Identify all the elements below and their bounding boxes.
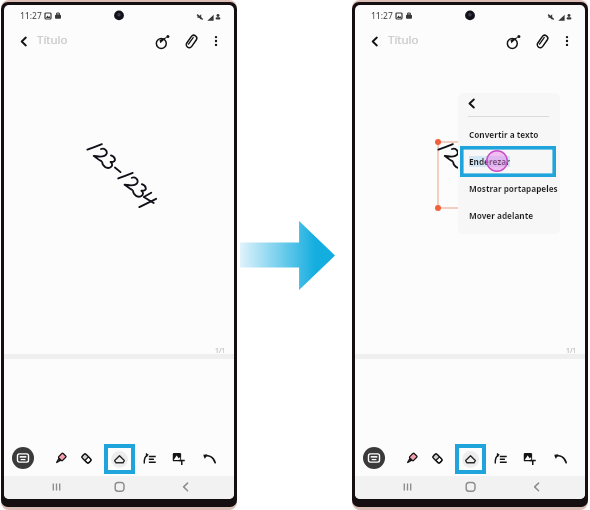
button[interactable]: Back xyxy=(171,476,201,499)
button[interactable]: Highlighter xyxy=(400,447,422,469)
button[interactable]: More options xyxy=(204,29,228,53)
staticText: 11:27 xyxy=(20,10,42,22)
button[interactable]: Back xyxy=(363,30,385,52)
staticText: Mover adelante xyxy=(469,210,534,221)
button[interactable]: Back xyxy=(12,30,34,52)
button[interactable]: Align text xyxy=(489,447,511,469)
staticText: 11:27 xyxy=(371,10,393,22)
button[interactable]: Insert text xyxy=(518,447,540,469)
button[interactable]: Eraser xyxy=(75,447,97,469)
button[interactable]: Writing mode xyxy=(363,447,385,469)
staticText: 1/1 xyxy=(215,346,226,356)
button[interactable]: Undo xyxy=(198,447,220,469)
button[interactable]: Home xyxy=(456,476,486,499)
button[interactable]: Recent apps xyxy=(41,476,71,499)
button[interactable]: Eraser xyxy=(426,447,448,469)
button[interactable]: Selection tool xyxy=(455,444,486,474)
button[interactable]: Align text xyxy=(138,447,160,469)
button[interactable]: Back xyxy=(522,476,552,499)
button[interactable]: Selection tool xyxy=(104,444,135,474)
button[interactable]: Writing mode xyxy=(12,447,34,469)
button[interactable]: Handwriting xyxy=(150,29,174,53)
staticText: Mostrar portapapeles xyxy=(469,183,558,194)
staticText: Enderezar xyxy=(469,156,510,167)
button[interactable]: Highlighter xyxy=(49,447,71,469)
staticText: Título xyxy=(37,32,68,48)
button[interactable]: More options xyxy=(555,29,579,53)
button[interactable]: Attach xyxy=(179,29,203,53)
button[interactable]: Attach xyxy=(530,29,554,53)
button[interactable]: Convertir a texto xyxy=(458,129,560,151)
button[interactable]: Insert text xyxy=(167,447,189,469)
button[interactable]: Mostrar portapapeles xyxy=(458,183,560,205)
button[interactable]: Home xyxy=(105,476,135,499)
staticText: Título xyxy=(388,32,419,48)
button[interactable]: Mover adelante xyxy=(458,210,560,232)
button[interactable]: Enderezar xyxy=(458,156,560,178)
staticText: 1/1 xyxy=(566,346,577,356)
button[interactable]: Handwriting xyxy=(501,29,525,53)
button[interactable]: Recent apps xyxy=(392,476,422,499)
staticText: Convertir a texto xyxy=(469,129,539,140)
button[interactable]: Back xyxy=(461,93,481,113)
button[interactable]: Undo xyxy=(549,447,571,469)
